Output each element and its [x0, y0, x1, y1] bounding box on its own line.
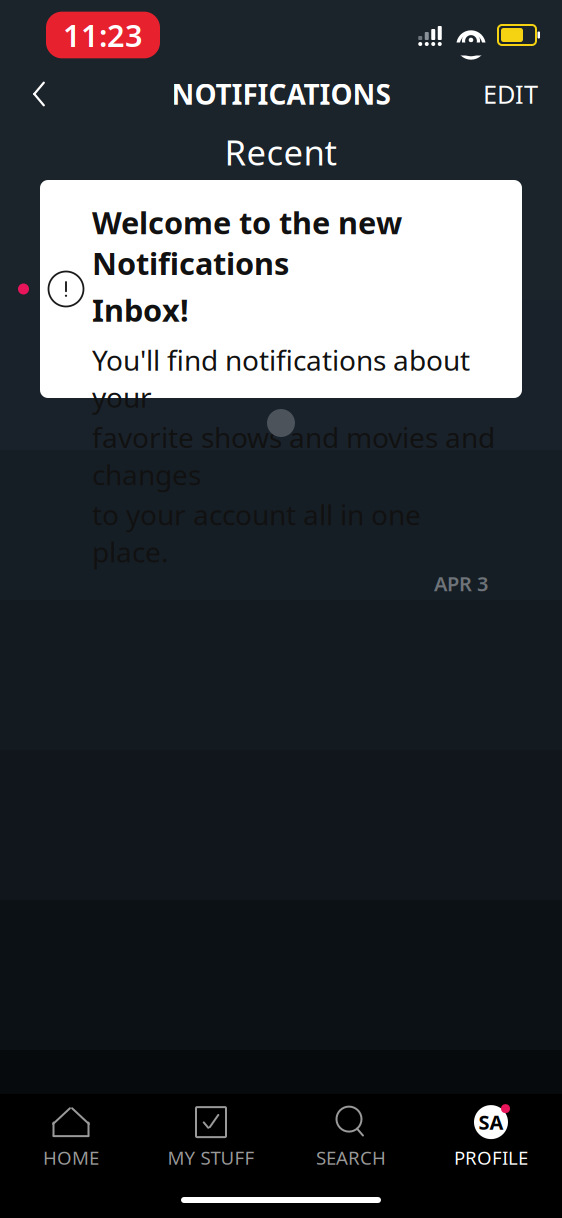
staticText: SEARCH — [316, 1145, 386, 1170]
staticText: Recent — [224, 129, 337, 175]
button[interactable]: HOME — [1, 1094, 141, 1182]
staticText: APR 3 — [434, 570, 488, 597]
staticText: favorite shows and movies and changes — [92, 418, 495, 493]
staticText: NOTIFICATIONS — [171, 75, 390, 113]
staticText: Inbox! — [92, 289, 189, 330]
staticText: HOME — [43, 1145, 99, 1170]
button[interactable]: SA — [421, 1094, 561, 1182]
button[interactable]: EDIT — [467, 69, 554, 119]
staticText: 11:23 — [63, 15, 143, 55]
button[interactable]: SEARCH — [281, 1094, 421, 1182]
staticText: EDIT — [483, 77, 538, 111]
button[interactable]: MY STUFF — [141, 1094, 281, 1182]
staticText: SA — [478, 1109, 503, 1135]
staticText: MY STUFF — [167, 1145, 254, 1170]
staticText: PROFILE — [454, 1145, 528, 1170]
staticText: You'll find notifications about your — [92, 341, 470, 416]
staticText: Welcome to the new Notifications — [92, 202, 402, 283]
staticText: to your account all in one place. — [92, 496, 421, 570]
button[interactable]: Back — [8, 69, 70, 119]
button[interactable]: Welcome to the new Notifications — [40, 180, 522, 398]
